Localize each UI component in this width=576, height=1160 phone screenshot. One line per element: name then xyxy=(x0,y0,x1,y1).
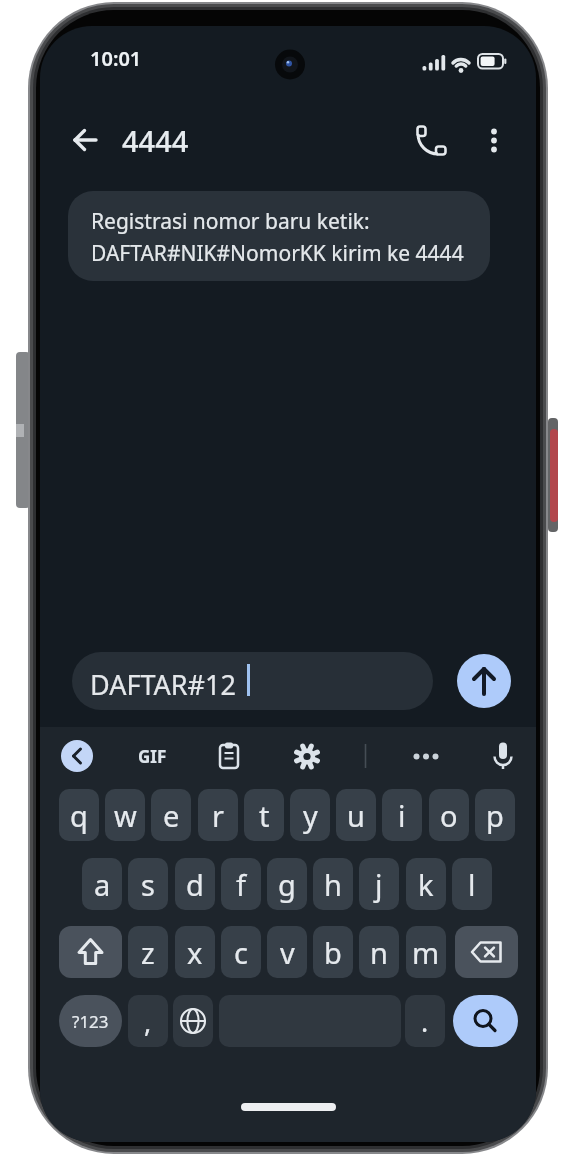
staticText: h xyxy=(324,865,342,904)
button[interactable] xyxy=(486,739,520,773)
staticText: l xyxy=(468,865,476,904)
button[interactable] xyxy=(457,654,511,708)
button[interactable]: y xyxy=(290,789,330,841)
staticText: GIF xyxy=(138,745,167,768)
button[interactable]: f xyxy=(221,858,261,910)
button[interactable]: h xyxy=(313,858,353,910)
button[interactable] xyxy=(212,739,246,773)
button[interactable] xyxy=(61,740,93,772)
staticText: . xyxy=(421,1003,429,1040)
button[interactable]: 4444 xyxy=(122,120,232,160)
staticText: m xyxy=(412,933,440,972)
button[interactable] xyxy=(455,926,518,978)
button[interactable]: r xyxy=(198,789,238,841)
staticText: i xyxy=(398,796,406,835)
button[interactable]: m xyxy=(406,926,446,978)
button[interactable] xyxy=(474,116,514,164)
staticText: a xyxy=(94,865,111,904)
button[interactable]: k xyxy=(406,858,446,910)
button[interactable] xyxy=(68,191,490,281)
staticText: , xyxy=(144,1003,152,1040)
staticText: y xyxy=(303,796,318,835)
button[interactable]: , xyxy=(128,995,168,1047)
button[interactable]: b xyxy=(313,926,353,978)
button[interactable]: u xyxy=(336,789,376,841)
staticText: b xyxy=(324,933,342,972)
button[interactable] xyxy=(408,116,456,164)
staticText: DAFTAR#12 xyxy=(90,666,236,696)
button[interactable]: t xyxy=(244,789,284,841)
staticText: g xyxy=(278,865,296,904)
button[interactable]: i xyxy=(382,789,422,841)
button[interactable]: o xyxy=(429,789,469,841)
staticText: e xyxy=(163,796,180,835)
button[interactable]: a xyxy=(82,858,122,910)
button[interactable] xyxy=(453,995,518,1047)
staticText: Registrasi nomor baru ketik: xyxy=(91,207,370,236)
button[interactable]: x xyxy=(175,926,215,978)
button[interactable]: j xyxy=(359,858,399,910)
button[interactable] xyxy=(59,926,122,978)
staticText: t xyxy=(259,796,270,835)
staticText: o xyxy=(440,796,458,835)
button[interactable]: g xyxy=(267,858,307,910)
button[interactable] xyxy=(173,995,213,1047)
staticText: q xyxy=(70,796,88,835)
staticText: s xyxy=(141,865,155,904)
staticText: c xyxy=(234,933,248,972)
staticText: r xyxy=(212,796,224,835)
staticText: v xyxy=(280,933,295,972)
staticText: p xyxy=(486,796,504,835)
button[interactable]: GIF xyxy=(132,742,172,770)
staticText: u xyxy=(347,796,365,835)
button[interactable]: ?123 xyxy=(59,995,122,1047)
button[interactable] xyxy=(62,116,110,164)
staticText: d xyxy=(186,865,204,904)
button[interactable]: z xyxy=(128,926,168,978)
staticText: 4444 xyxy=(122,121,189,160)
button[interactable]: s xyxy=(128,858,168,910)
button[interactable]: n xyxy=(359,926,399,978)
button[interactable] xyxy=(290,739,324,773)
staticText: j xyxy=(375,865,383,904)
button[interactable]: l xyxy=(452,858,492,910)
button[interactable] xyxy=(72,652,433,710)
staticText: z xyxy=(141,933,155,972)
staticText: w xyxy=(114,796,137,835)
staticText: x xyxy=(187,933,203,972)
staticText: DAFTAR#NIK#NomorKK kirim ke 4444 xyxy=(91,239,464,268)
staticText: k xyxy=(418,865,434,904)
button[interactable]: v xyxy=(267,926,307,978)
staticText: 10:01 xyxy=(90,45,142,72)
button[interactable]: e xyxy=(151,789,191,841)
button[interactable] xyxy=(406,739,446,773)
staticText: n xyxy=(370,933,388,972)
button[interactable]: c xyxy=(221,926,261,978)
button[interactable]: p xyxy=(475,789,515,841)
button[interactable]: w xyxy=(105,789,145,841)
button[interactable]: q xyxy=(59,789,99,841)
staticText: ?123 xyxy=(72,1010,109,1033)
button[interactable]: . xyxy=(405,995,445,1047)
button[interactable]: d xyxy=(175,858,215,910)
staticText: f xyxy=(236,865,246,904)
